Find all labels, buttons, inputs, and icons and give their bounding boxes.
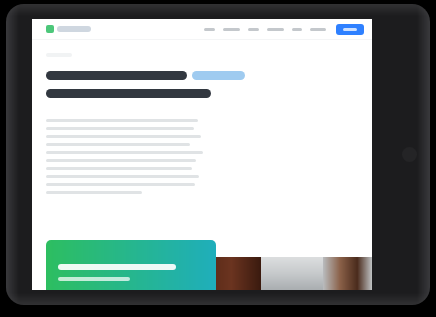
button[interactable]: Menu item	[248, 28, 259, 31]
button[interactable]: Menu item	[310, 28, 326, 31]
button[interactable]: Home logo	[46, 25, 91, 33]
button[interactable]	[46, 240, 216, 290]
button[interactable]: Menu item	[223, 28, 240, 31]
button[interactable]: Menu item	[267, 28, 284, 31]
button[interactable]: Menu item	[292, 28, 302, 31]
button[interactable]: Home	[402, 147, 417, 162]
button[interactable]: Contact us	[336, 24, 364, 35]
button[interactable]: Menu item	[204, 28, 215, 31]
